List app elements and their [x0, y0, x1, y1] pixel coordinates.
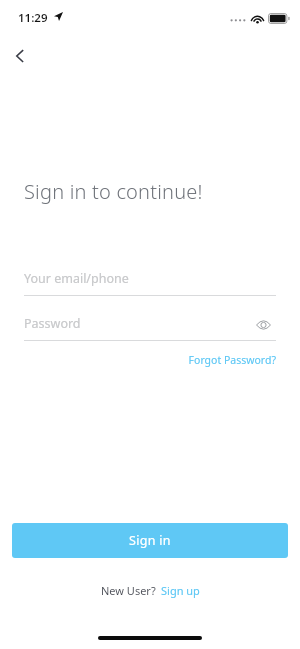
button[interactable]: Sign in [12, 523, 288, 558]
button[interactable]: Back [6, 42, 34, 70]
button[interactable]: Password [24, 311, 276, 341]
staticText: Password [24, 315, 81, 332]
staticText: Sign in to continue! [24, 178, 203, 205]
staticText: Sign in [129, 532, 171, 549]
button[interactable]: Forgot Password? [180, 351, 276, 369]
button[interactable]: Your email/phone [24, 266, 276, 296]
staticText: Sign up [161, 583, 200, 598]
button[interactable]: Show password [250, 311, 276, 339]
staticText: Your email/phone [24, 270, 129, 287]
button[interactable]: Sign up [161, 583, 200, 598]
staticText: Forgot Password? [188, 353, 276, 367]
staticText: New User? [101, 583, 156, 598]
staticText: 11:29 [18, 10, 48, 26]
